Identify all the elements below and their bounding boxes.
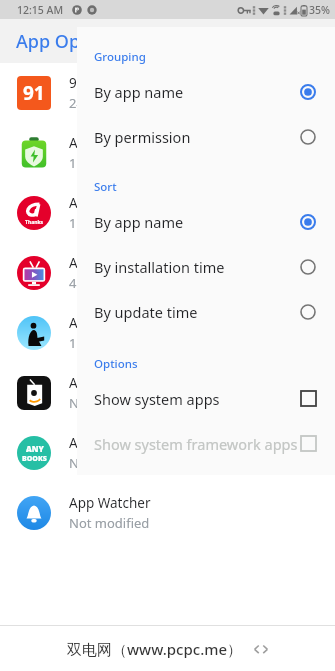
staticText: Options bbox=[94, 356, 138, 372]
staticText: 91 Assistant bbox=[69, 74, 146, 92]
staticText: BOOKS bbox=[22, 454, 47, 464]
staticText: 1 modified bbox=[69, 334, 135, 352]
staticText: AirTV bbox=[69, 254, 103, 272]
button[interactable]: By app name bbox=[77, 69, 335, 114]
staticText: Not modified bbox=[69, 394, 150, 412]
staticText: App Ops bbox=[16, 29, 89, 54]
button[interactable]: 91 bbox=[0, 63, 335, 123]
staticText: By permission bbox=[94, 127, 191, 147]
staticText: App Watcher bbox=[69, 494, 151, 512]
staticText: ANY bbox=[26, 443, 44, 454]
staticText: Amazon Kindle bbox=[69, 314, 164, 332]
button[interactable]: Thanks bbox=[0, 183, 335, 243]
staticText: Sort bbox=[94, 179, 117, 195]
staticText: Show system framework apps bbox=[94, 434, 298, 454]
staticText: Not modified bbox=[69, 454, 150, 472]
button[interactable]: By app name bbox=[77, 199, 335, 244]
staticText: AnyBooks bbox=[69, 434, 132, 452]
button[interactable]: Show system apps bbox=[77, 376, 335, 421]
staticText: 35% bbox=[309, 3, 330, 17]
button[interactable]: Show system framework apps bbox=[77, 421, 335, 466]
staticText: By installation time bbox=[94, 257, 225, 277]
button[interactable]: ANY bbox=[0, 423, 335, 483]
button[interactable]: By update time bbox=[77, 289, 335, 334]
staticText: By app name bbox=[94, 212, 184, 232]
button[interactable]: By installation time bbox=[77, 244, 335, 289]
button[interactable]: Amazon Shopping bbox=[0, 363, 335, 423]
staticText: 24 modified bbox=[69, 94, 142, 112]
staticText: 1 modified bbox=[69, 214, 135, 232]
staticText: 12:15 AM bbox=[17, 3, 64, 17]
staticText: 双电网（www.pcpc.me） bbox=[67, 639, 243, 659]
staticText: Show system apps bbox=[94, 389, 220, 409]
button[interactable]: By permission bbox=[77, 114, 335, 159]
staticText: 1 modified bbox=[69, 154, 135, 172]
staticText: By app name bbox=[94, 82, 184, 102]
button[interactable]: AirTV bbox=[0, 243, 335, 303]
staticText: Grouping bbox=[94, 49, 146, 65]
staticText: Airtel Thanks bbox=[69, 194, 152, 212]
staticText: Amazon Shopping bbox=[69, 374, 185, 392]
button[interactable]: Ampere bbox=[0, 123, 335, 183]
button[interactable]: Amazon Kindle bbox=[0, 303, 335, 363]
staticText: Ampere bbox=[69, 134, 120, 152]
button[interactable]: App Watcher bbox=[0, 483, 335, 543]
staticText: Not modified bbox=[69, 514, 150, 532]
staticText: 4 modified bbox=[69, 274, 135, 292]
staticText: 91 bbox=[23, 80, 45, 106]
staticText: Thanks bbox=[25, 219, 43, 226]
staticText: By update time bbox=[94, 302, 198, 322]
